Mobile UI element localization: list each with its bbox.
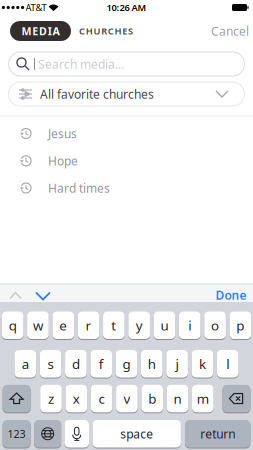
button[interactable]: Next field	[33, 288, 53, 304]
staticText: w	[33, 316, 43, 334]
button[interactable]: Jesus	[0, 122, 253, 144]
button[interactable]: M	[10, 21, 71, 41]
button[interactable]: z	[40, 384, 62, 413]
button[interactable]: b	[141, 384, 163, 413]
staticText: n	[173, 390, 181, 407]
staticText: Search media...	[38, 56, 124, 72]
staticText: E	[122, 25, 127, 37]
button[interactable]: k	[192, 349, 213, 378]
button[interactable]: p	[230, 311, 251, 339]
staticText: All favorite churches	[40, 86, 154, 102]
button[interactable]: C	[79, 21, 133, 41]
button[interactable]: e	[52, 311, 74, 339]
staticText: return	[200, 426, 235, 442]
button[interactable]: Hard times	[0, 177, 253, 199]
staticText: b	[148, 390, 156, 407]
button[interactable]: Search media	[8, 52, 244, 76]
staticText: S	[128, 25, 133, 37]
button[interactable]: x	[65, 384, 87, 413]
staticText: h	[148, 355, 156, 373]
button[interactable]: Next keyboard	[34, 419, 61, 448]
button[interactable]: space	[93, 419, 181, 448]
staticText: R	[101, 25, 107, 37]
staticText: q	[9, 316, 17, 334]
button[interactable]: v	[116, 384, 138, 413]
button[interactable]: r	[78, 311, 99, 339]
staticText: v	[123, 390, 130, 407]
button[interactable]: y	[128, 311, 150, 339]
staticText: Hope	[48, 153, 78, 169]
button[interactable]: l	[217, 349, 238, 378]
button[interactable]: d	[65, 349, 87, 378]
button[interactable]: o	[204, 311, 226, 339]
staticText: c	[99, 390, 105, 407]
staticText: Cancel	[211, 23, 249, 39]
staticText: f	[99, 355, 104, 373]
button[interactable]: m	[192, 384, 214, 413]
button[interactable]: Previous field	[6, 287, 24, 303]
button[interactable]: a	[14, 349, 36, 378]
button[interactable]: g	[116, 349, 137, 378]
button[interactable]: u	[154, 311, 175, 339]
button[interactable]: j	[166, 349, 188, 378]
button[interactable]: q	[2, 311, 23, 339]
staticText: H	[114, 25, 121, 37]
staticText: e	[59, 316, 67, 334]
staticText: x	[73, 390, 80, 407]
button[interactable]: h	[141, 349, 163, 378]
staticText: Done	[215, 287, 246, 303]
staticText: Jesus	[48, 125, 77, 141]
staticText: I	[48, 24, 52, 38]
button[interactable]: Cancel	[211, 21, 249, 41]
staticText: 10:26 AM	[106, 1, 146, 14]
staticText: j	[176, 355, 179, 373]
button[interactable]: return	[185, 419, 250, 448]
button[interactable]: c	[91, 384, 112, 413]
staticText: M	[22, 24, 32, 38]
button[interactable]: Dictate	[64, 419, 89, 448]
staticText: space	[120, 426, 153, 442]
staticText: C	[79, 25, 85, 37]
staticText: y	[136, 316, 143, 334]
staticText: p	[236, 316, 244, 334]
button[interactable]: t	[103, 311, 125, 339]
staticText: C	[108, 25, 114, 37]
staticText: H	[86, 25, 93, 37]
staticText: Hard times	[48, 180, 110, 196]
staticText: z	[48, 390, 54, 407]
staticText: d	[72, 355, 80, 373]
staticText: t	[111, 316, 116, 334]
button[interactable]: i	[179, 311, 200, 339]
staticText: D	[39, 24, 47, 38]
staticText: o	[211, 316, 219, 334]
staticText: u	[160, 316, 168, 334]
staticText: E	[32, 24, 38, 38]
staticText: r	[85, 316, 91, 334]
button[interactable]: s	[40, 349, 61, 378]
button[interactable]: 123	[3, 419, 31, 448]
button[interactable]: Hope	[0, 150, 253, 172]
staticText: g	[122, 355, 130, 373]
button[interactable]: n	[167, 384, 188, 413]
staticText: k	[199, 355, 206, 373]
button[interactable]: Shift	[3, 384, 31, 413]
staticText: l	[226, 355, 229, 373]
staticText: U	[93, 25, 100, 37]
button[interactable]: Delete	[222, 384, 250, 413]
staticText: a	[22, 355, 29, 373]
staticText: s	[48, 355, 54, 373]
staticText: i	[188, 316, 191, 334]
staticText: m	[197, 390, 209, 407]
button[interactable]: Done	[215, 287, 246, 303]
staticText: A	[52, 24, 59, 38]
button[interactable]: w	[27, 311, 49, 339]
staticText: 123	[8, 427, 26, 441]
button[interactable]: f	[90, 349, 112, 378]
staticText: AT&T	[25, 1, 46, 14]
button[interactable]: All favorite churches	[8, 82, 244, 106]
